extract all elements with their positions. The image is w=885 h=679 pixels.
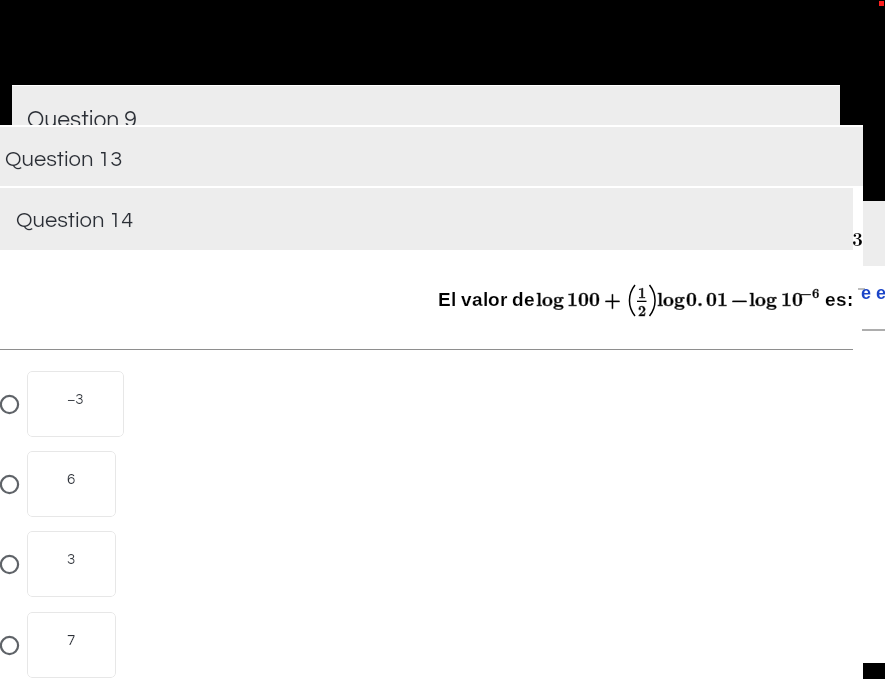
button[interactable]: Question 9: [12, 86, 840, 125]
staticText: Question 9: [27, 108, 137, 132]
button[interactable]: 7: [27, 612, 116, 678]
staticText: 3: [67, 552, 76, 567]
staticText: 7: [67, 633, 76, 648]
staticText: Question 14: [16, 209, 134, 232]
button[interactable]: −3: [27, 371, 124, 437]
staticText: −3: [67, 392, 84, 407]
button[interactable]: 6: [27, 451, 116, 517]
button[interactable]: 3: [27, 531, 116, 597]
staticText: 6: [67, 472, 76, 487]
button[interactable]: Question 14: [0, 188, 853, 250]
staticText: Question 13: [5, 148, 123, 171]
button[interactable]: Question 13: [0, 127, 863, 186]
